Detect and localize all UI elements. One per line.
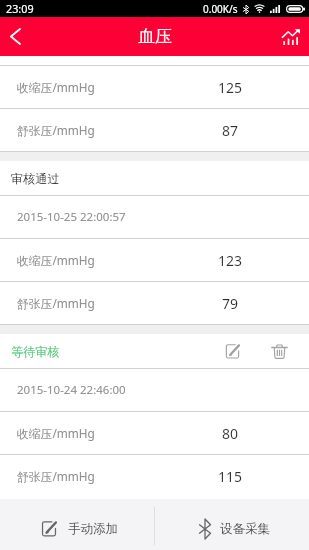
staticText: 115 <box>200 467 260 486</box>
button[interactable]: Edit <box>217 336 247 366</box>
button[interactable]: 舒张压/mmHg <box>0 455 309 497</box>
staticText: 舒张压/mmHg <box>17 468 95 484</box>
button[interactable]: 舒张压/mmHg <box>0 282 309 324</box>
staticText: 收缩压/mmHg <box>17 425 95 441</box>
button[interactable]: 舒张压/mmHg <box>0 109 309 151</box>
staticText: 手动添加 <box>68 521 118 537</box>
staticText: 舒张压/mmHg <box>17 122 95 138</box>
button[interactable]: 手动添加 <box>0 508 154 550</box>
staticText: 79 <box>200 294 260 313</box>
staticText: 80 <box>200 424 260 443</box>
button[interactable]: Back <box>0 17 30 56</box>
staticText: 审核通过 <box>11 171 60 186</box>
button[interactable]: 设备采集 <box>154 508 309 550</box>
button[interactable]: Statistics chart <box>273 17 309 56</box>
button[interactable]: 收缩压/mmHg <box>0 66 309 108</box>
button[interactable]: 收缩压/mmHg <box>0 239 309 281</box>
staticText: 等待审核 <box>11 344 60 359</box>
staticText: 23:09 <box>6 1 34 16</box>
staticText: 设备采集 <box>220 521 270 537</box>
staticText: 0.00K/s <box>203 2 238 16</box>
button[interactable]: 2015-10-24 22:46:00 <box>0 369 309 411</box>
staticText: 收缩压/mmHg <box>17 252 95 268</box>
button[interactable]: 2015-10-25 22:00:57 <box>0 196 309 238</box>
staticText: 2015-10-25 22:00:57 <box>17 209 126 225</box>
staticText: 125 <box>200 78 260 97</box>
button[interactable]: Delete <box>264 336 294 366</box>
button[interactable]: 收缩压/mmHg <box>0 412 309 454</box>
staticText: 2015-10-24 22:46:00 <box>17 382 126 398</box>
staticText: 血压 <box>138 26 172 47</box>
staticText: 123 <box>200 251 260 270</box>
staticText: 舒张压/mmHg <box>17 295 95 311</box>
staticText: 收缩压/mmHg <box>17 79 95 95</box>
staticText: 87 <box>200 121 260 140</box>
